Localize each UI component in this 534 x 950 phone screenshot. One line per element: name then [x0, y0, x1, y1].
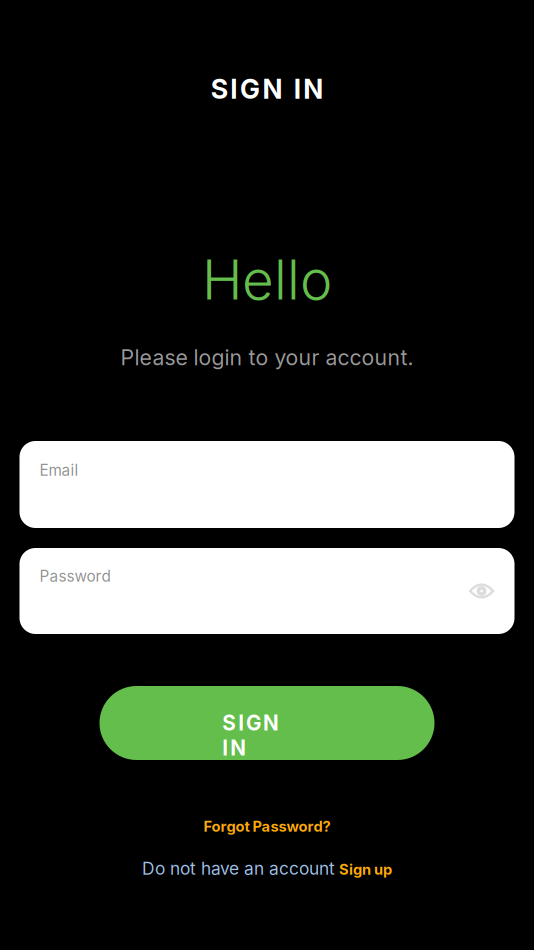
staticText: SIGN IN — [211, 73, 323, 105]
staticText: Please login to your account. — [120, 345, 413, 370]
staticText: SIGN IN — [222, 710, 312, 735]
button[interactable]: SIGN IN — [99, 686, 434, 760]
staticText: Hello — [202, 246, 332, 312]
staticText: Do not have an account — [142, 858, 335, 879]
button[interactable]: Do not have an account — [142, 858, 392, 879]
button[interactable]: Email — [19, 441, 514, 528]
button[interactable]: Password — [19, 548, 514, 634]
staticText: Forgot Password? — [203, 818, 330, 835]
button[interactable]: Forgot Password? — [203, 818, 330, 835]
staticText: Sign up — [339, 861, 392, 878]
staticText: Password — [39, 567, 110, 586]
staticText: Email — [39, 461, 78, 480]
